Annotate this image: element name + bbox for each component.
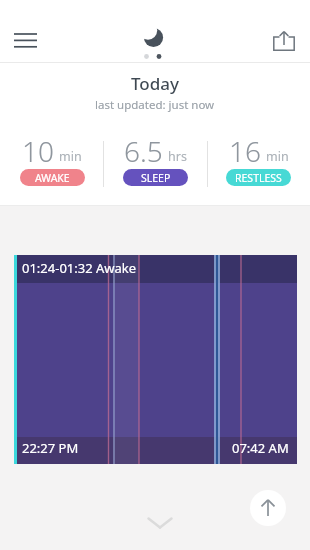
staticText: 10 <box>22 132 54 170</box>
button[interactable] <box>250 490 286 526</box>
staticText: 6.5 <box>124 132 163 170</box>
button[interactable] <box>140 508 180 538</box>
button[interactable]: AWAKE <box>20 169 85 186</box>
button[interactable] <box>2 22 49 59</box>
staticText: 16 <box>229 132 261 170</box>
staticText: 07:42 AM <box>232 439 289 457</box>
staticText: last updated: just now <box>95 97 215 113</box>
staticText: Today <box>131 72 179 95</box>
staticText: 01:24-01:32 Awake <box>22 259 137 277</box>
staticText: min <box>266 148 289 165</box>
staticText: RESTLESS <box>235 171 282 185</box>
staticText: 22:27 PM <box>22 439 79 457</box>
button[interactable]: RESTLESS <box>226 169 291 186</box>
button[interactable] <box>263 20 305 62</box>
button[interactable]: 01:24-01:32 Awake <box>14 255 297 464</box>
button[interactable]: SLEEP <box>123 169 188 186</box>
staticText: hrs <box>168 148 187 165</box>
staticText: AWAKE <box>35 171 70 185</box>
staticText: min <box>59 148 82 165</box>
staticText: SLEEP <box>141 171 171 185</box>
